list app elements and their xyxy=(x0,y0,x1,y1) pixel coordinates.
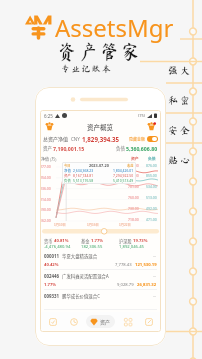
staticText: 强 大 xyxy=(166,65,192,75)
staticText: 资产管家 xyxy=(57,41,142,61)
staticText: 安 全 xyxy=(166,125,192,135)
staticText: 7,778.43 xyxy=(115,262,132,268)
other: AssetsMgr logo xyxy=(25,14,52,40)
staticText: ··· xyxy=(153,294,157,299)
staticText: 今日 xyxy=(64,163,71,168)
staticText: 资产 xyxy=(131,156,139,162)
staticText: CNY xyxy=(71,136,80,142)
staticText: 5,360,606.80 xyxy=(126,145,158,152)
staticText: 190.00 xyxy=(40,207,51,212)
staticText: 负债 xyxy=(64,178,71,183)
staticText: 40.42% xyxy=(44,262,59,268)
staticText: -4,476,480.94 xyxy=(44,244,71,250)
staticText: 净值 xyxy=(64,168,71,173)
button[interactable]: Categories xyxy=(119,314,136,329)
staticText: 876.00 xyxy=(146,163,157,168)
staticText: 236.00 xyxy=(40,186,51,191)
staticText: 负债 xyxy=(116,145,125,152)
staticText: 1月10日 xyxy=(54,222,66,227)
staticText: 534.00 xyxy=(146,184,157,189)
staticText: 贴 心 xyxy=(166,155,192,165)
staticText: ··· xyxy=(153,254,157,259)
staticText: 9,028.79 xyxy=(117,282,134,288)
staticText: 277.00 xyxy=(40,164,51,169)
staticText: 隐藏金额 xyxy=(129,136,145,142)
staticText: 1,804,426.01 xyxy=(113,168,134,173)
staticText: 2023-07-20 xyxy=(89,163,109,168)
staticText: 182,306.55 xyxy=(81,244,103,250)
staticText: 负债 xyxy=(148,156,156,162)
staticText: 资产 xyxy=(64,173,71,178)
staticText: 730.00 xyxy=(128,206,139,211)
staticText: 009331 xyxy=(44,293,60,299)
button[interactable]: Notifications xyxy=(147,122,156,131)
staticText: 1月22日 xyxy=(119,222,131,227)
staticText: 492.00 xyxy=(146,206,157,211)
staticText: 162.00 xyxy=(40,218,51,223)
staticText: 资产概览 xyxy=(87,122,113,131)
staticText: 1.77% xyxy=(91,238,104,244)
staticText: 1.77% xyxy=(44,282,57,288)
staticText: 资产 xyxy=(100,318,111,325)
button[interactable]: 货币 xyxy=(44,238,81,250)
staticText: 1,892,046.45 xyxy=(119,244,144,250)
staticText: 沪深股 xyxy=(119,238,132,244)
staticText: 8,167,744.81 xyxy=(73,173,94,178)
button[interactable]: 沪深股 xyxy=(119,238,157,250)
staticText: 5,410,513.49 xyxy=(113,178,134,183)
staticText: 专业记账本 xyxy=(61,64,113,73)
button[interactable]: 000011 xyxy=(40,251,161,271)
staticText: 471.00 xyxy=(146,217,157,222)
staticText: 760.00 xyxy=(128,195,139,200)
staticText: 40.81% xyxy=(54,238,69,244)
staticText: 广发科鑫灵活配置混合A xyxy=(62,273,109,279)
staticText: 002446 xyxy=(44,273,60,279)
staticText: 513.00 xyxy=(146,195,157,200)
staticText: 货币 xyxy=(44,238,53,244)
staticText: 718.00 xyxy=(128,217,139,222)
staticText: 781.00 xyxy=(128,184,139,189)
button[interactable]: Hide amount xyxy=(147,136,158,142)
staticText: 6:25 xyxy=(44,113,53,119)
staticText: ··· xyxy=(153,274,157,279)
staticText: 7,190,001.15 xyxy=(53,145,85,152)
staticText: 26,831.32 xyxy=(137,282,157,288)
staticText: 000011 xyxy=(44,253,60,259)
staticText: 华夏大盘精选混合 xyxy=(62,253,98,259)
button[interactable]: Menu xyxy=(45,122,54,131)
staticText: 820.00 xyxy=(128,163,139,168)
button[interactable]: 资产 xyxy=(86,315,115,328)
staticText: 121,530.19 xyxy=(135,262,157,268)
button[interactable]: 基金 xyxy=(81,238,119,250)
staticText: 1月16日 xyxy=(87,222,99,227)
staticText: 鹏华成长价值混合C xyxy=(62,293,100,299)
button[interactable]: Time xyxy=(65,314,82,329)
button[interactable]: 002446 xyxy=(40,271,161,291)
staticText: 基金 xyxy=(81,238,90,244)
staticText: 855.00 xyxy=(146,173,157,178)
button[interactable]: 009331 xyxy=(40,291,161,311)
staticText: 1,829,394.35 xyxy=(82,135,120,143)
staticText: 7,294,922.50 xyxy=(113,173,134,178)
staticText: 资产 xyxy=(43,145,52,152)
button[interactable]: Records xyxy=(44,314,61,329)
staticText: 2,634,368.23 xyxy=(73,168,94,173)
staticText: AssetsMgr xyxy=(55,11,174,44)
staticText: 净值 (万) xyxy=(41,156,57,162)
staticText: 总资产净值 xyxy=(43,135,69,142)
staticText: 214.00 xyxy=(40,197,51,202)
staticText: 收益 xyxy=(127,163,134,168)
staticText: (75) xyxy=(138,113,145,118)
staticText: 19.73% xyxy=(133,238,148,244)
button[interactable]: Reports xyxy=(140,314,157,329)
staticText: 800.00 xyxy=(128,173,139,178)
staticText: 5,513,176.58 xyxy=(73,178,94,183)
staticText: 254.00 xyxy=(40,175,51,180)
staticText: 私 密 xyxy=(166,95,192,105)
